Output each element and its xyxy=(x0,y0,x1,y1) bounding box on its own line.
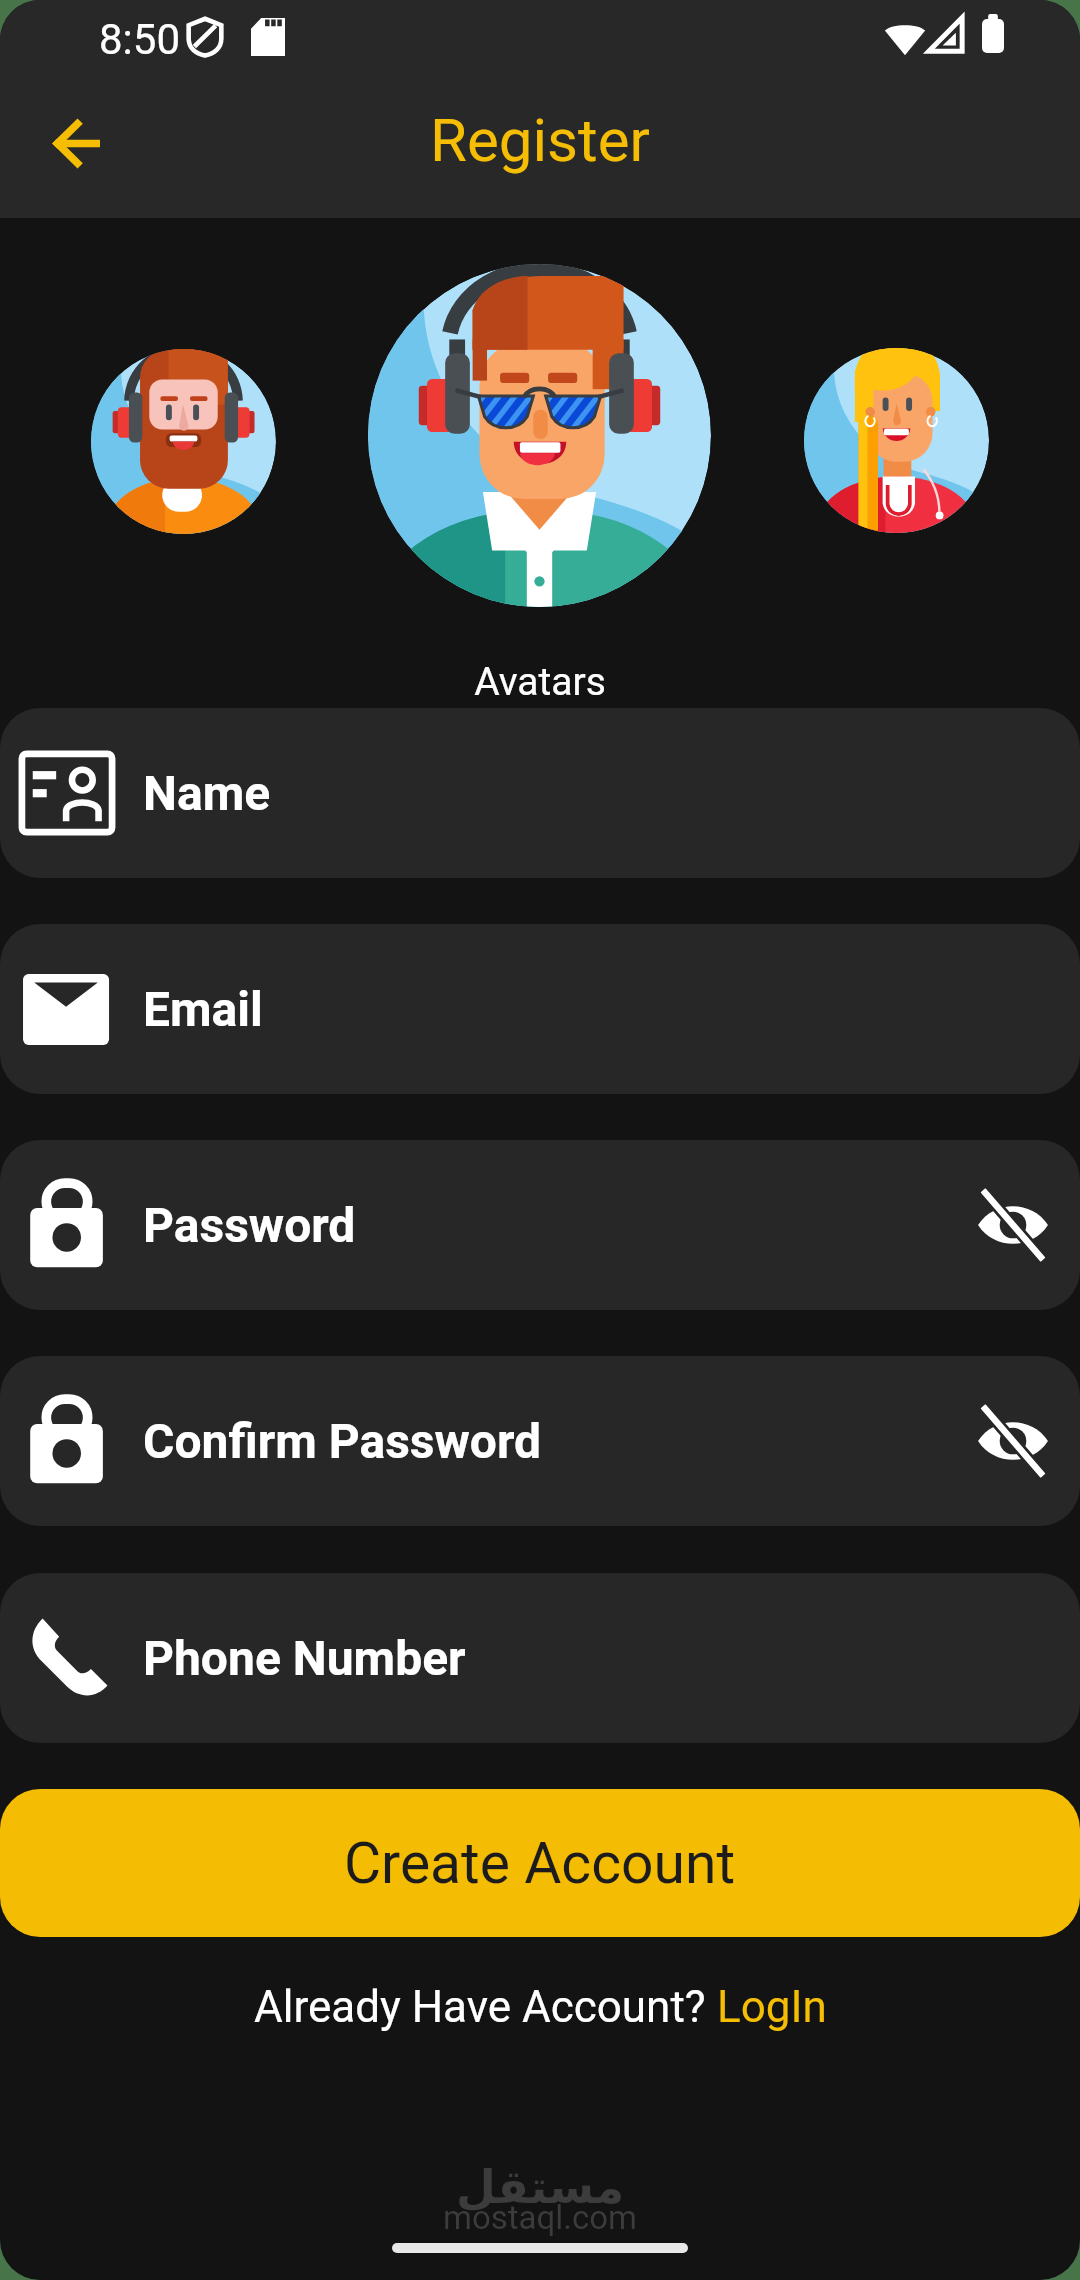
staticText: Confirm Password xyxy=(143,1413,542,1469)
button[interactable]: Back xyxy=(22,88,132,198)
staticText: Create Account xyxy=(344,1830,736,1897)
button[interactable]: Email xyxy=(0,924,1080,1094)
staticText: 8:50 xyxy=(99,15,180,64)
button[interactable]: Confirm Password xyxy=(0,1356,1080,1526)
staticText: LogIn xyxy=(717,1981,827,2033)
button[interactable]: Phone Number xyxy=(0,1573,1080,1743)
button[interactable]: Create Account xyxy=(0,1789,1080,1937)
staticText: Register xyxy=(430,105,650,175)
button[interactable]: Password xyxy=(0,1140,1080,1310)
button[interactable]: Toggle password visibility xyxy=(967,1395,1059,1487)
staticText: Password xyxy=(143,1197,356,1253)
staticText: مستقل xyxy=(0,2160,1080,2214)
staticText: Avatars xyxy=(0,659,1080,705)
button[interactable]: LogIn xyxy=(717,1981,827,2033)
staticText: Name xyxy=(143,765,271,821)
button[interactable]: Name xyxy=(0,708,1080,878)
staticText: mostaql.com xyxy=(0,2198,1080,2237)
button[interactable]: Toggle password visibility xyxy=(967,1179,1059,1271)
staticText: Email xyxy=(143,981,263,1037)
staticText: Phone Number xyxy=(143,1630,466,1686)
staticText: Already Have Account? xyxy=(254,1981,717,2033)
